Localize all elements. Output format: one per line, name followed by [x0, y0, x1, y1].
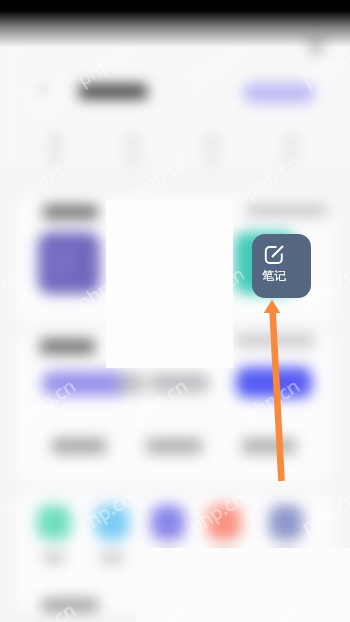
- other: 笔记: [264, 245, 284, 265]
- button[interactable]: 笔记: [252, 234, 311, 298]
- staticText: 笔记: [262, 268, 286, 283]
